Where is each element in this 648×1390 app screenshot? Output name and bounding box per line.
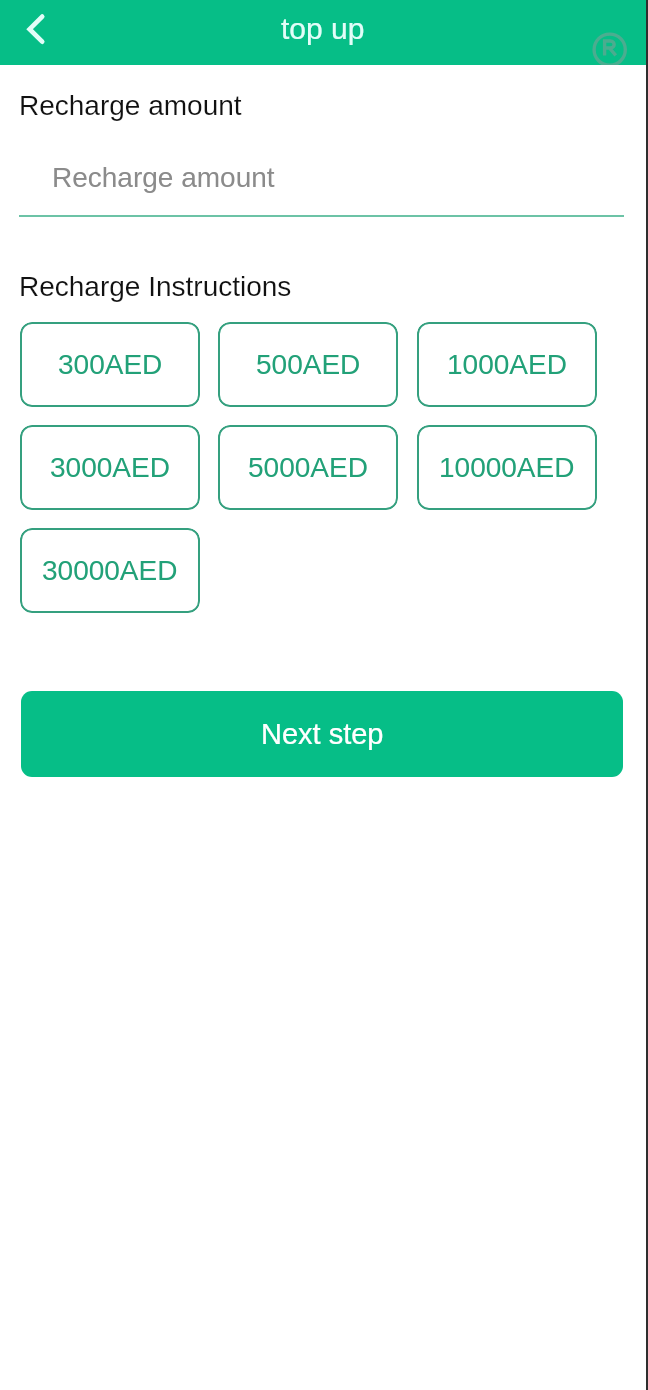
staticText: top up <box>281 12 365 46</box>
staticText: Next step <box>261 718 384 750</box>
staticText: Recharge amount <box>19 90 242 121</box>
button[interactable]: 10000AED <box>417 425 597 510</box>
button[interactable]: 1000AED <box>417 322 597 407</box>
button[interactable]: 30000AED <box>20 528 200 613</box>
staticText: 500AED <box>256 349 361 380</box>
staticText: 3000AED <box>50 452 170 483</box>
button[interactable]: 300AED <box>20 322 200 407</box>
staticText: 1000AED <box>447 349 567 380</box>
staticText: 300AED <box>58 349 163 380</box>
button[interactable]: Recharge amount <box>20 152 624 208</box>
staticText: Recharge Instructions <box>19 271 292 302</box>
staticText: 5000AED <box>248 452 368 483</box>
staticText: 30000AED <box>42 555 178 586</box>
button[interactable]: Back <box>6 4 64 62</box>
button[interactable]: 5000AED <box>218 425 398 510</box>
staticText: Recharge amount <box>52 162 275 193</box>
button[interactable]: 3000AED <box>20 425 200 510</box>
button[interactable]: Next step <box>21 691 623 777</box>
staticText: 10000AED <box>439 452 575 483</box>
button[interactable]: 500AED <box>218 322 398 407</box>
